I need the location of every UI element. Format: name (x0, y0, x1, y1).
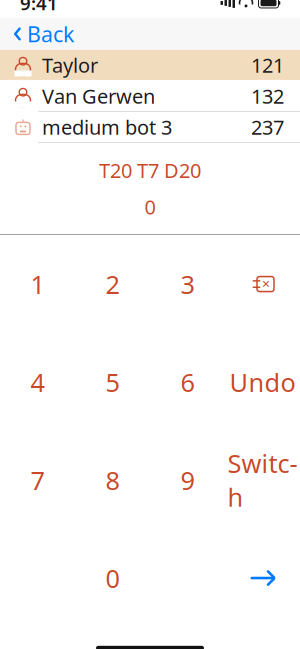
staticText: ✕ (261, 278, 270, 290)
staticText: Undo (229, 365, 295, 399)
button[interactable]: 6 (150, 333, 225, 431)
staticText: 5 (105, 365, 119, 399)
button[interactable]: Delete (225, 235, 300, 333)
button[interactable]: 5 (75, 333, 150, 431)
button[interactable]: Back (4, 14, 82, 54)
staticText: T20 T7 D20 (99, 157, 201, 183)
staticText: Back (27, 20, 74, 48)
staticText: 4 (30, 365, 44, 399)
button[interactable]: 1 (0, 235, 75, 333)
button[interactable]: 2 (75, 235, 150, 333)
staticText: 121 (251, 52, 284, 78)
staticText: 132 (251, 83, 284, 109)
staticText: Switch (227, 446, 297, 514)
staticText: medium bot 3 (42, 114, 172, 140)
staticText: 2 (105, 267, 119, 301)
staticText: 9:41 (20, 0, 58, 15)
staticText: 1 (30, 267, 44, 301)
staticText: 6 (180, 365, 194, 399)
button[interactable]: 0 (75, 529, 150, 627)
staticText: 3 (180, 267, 194, 301)
button[interactable]: Taylor (0, 50, 300, 81)
button[interactable]: 4 (0, 333, 75, 431)
staticText: 9 (180, 463, 194, 497)
button[interactable]: Undo (225, 333, 300, 431)
button[interactable]: Van Gerwen (0, 81, 300, 112)
staticText: 237 (251, 114, 284, 140)
staticText: Taylor (42, 52, 98, 78)
staticText: 0 (105, 561, 119, 595)
button[interactable]: Switch (225, 431, 300, 529)
button[interactable]: Enter (225, 529, 300, 627)
button[interactable]: 8 (75, 431, 150, 529)
staticText: 8 (105, 463, 119, 497)
staticText: 7 (30, 463, 44, 497)
staticText: 0 (144, 193, 155, 220)
button[interactable]: 9 (150, 431, 225, 529)
button[interactable]: 3 (150, 235, 225, 333)
button[interactable]: 7 (0, 431, 75, 529)
staticText: Van Gerwen (42, 83, 155, 109)
button[interactable]: medium bot 3 (0, 112, 300, 143)
